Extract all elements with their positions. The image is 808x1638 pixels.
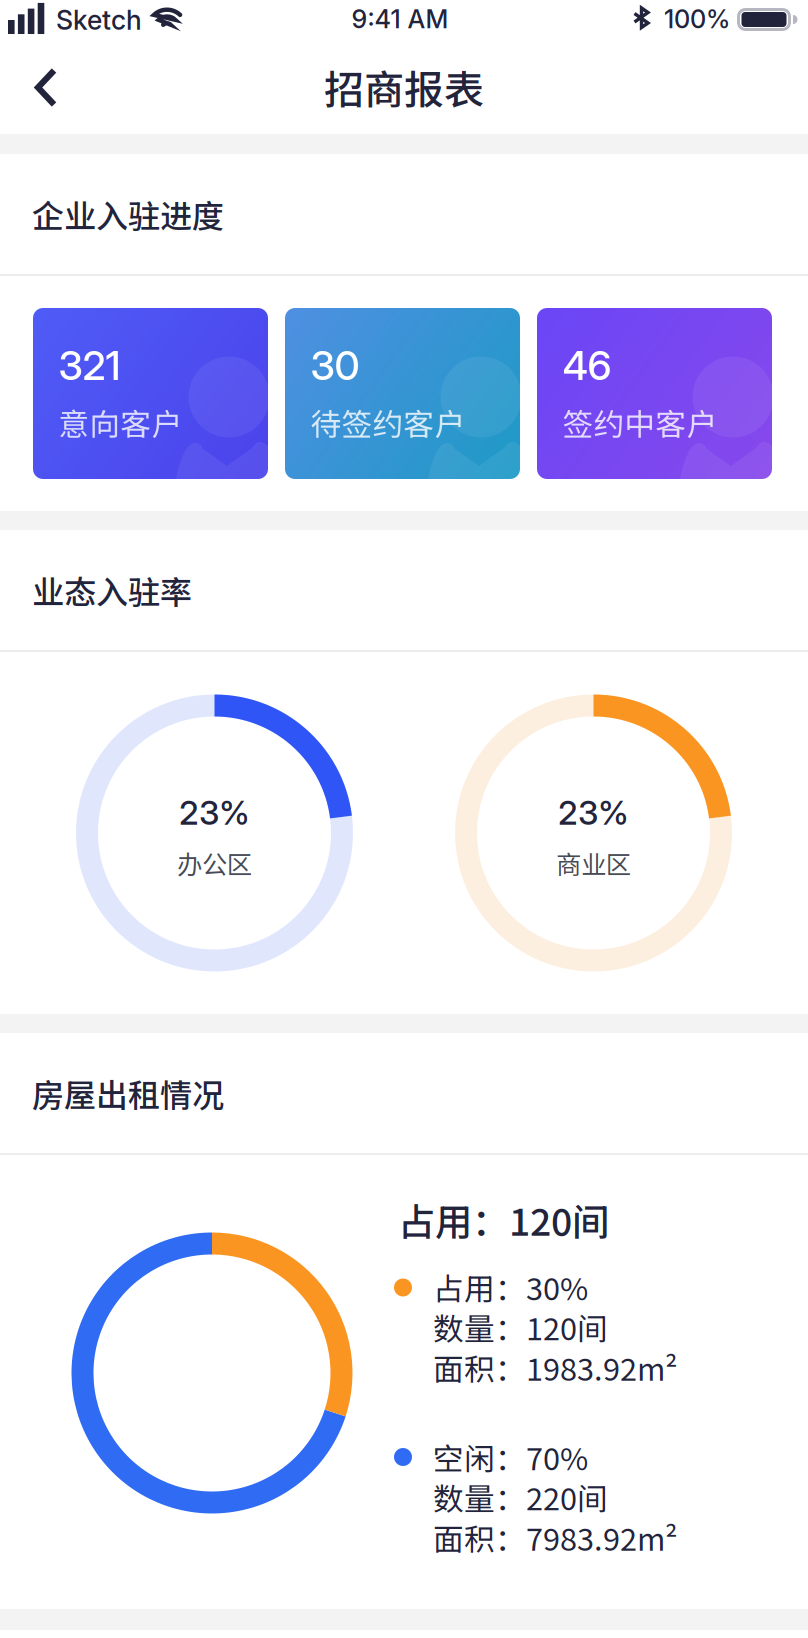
staticText: 办公区: [177, 845, 252, 881]
staticText: 签约中客户: [562, 400, 717, 445]
staticText: 意向客户: [58, 400, 182, 445]
staticText: 商业区: [556, 845, 631, 881]
staticText: Sketch: [56, 4, 142, 36]
staticText: 招商报表: [324, 58, 484, 116]
staticText: 数量：120间: [433, 1305, 608, 1349]
staticText: 100%: [664, 4, 730, 34]
staticText: 23%: [179, 792, 250, 833]
staticText: 数量：220间: [433, 1475, 608, 1519]
staticText: 待签约客户: [310, 400, 465, 445]
staticText: 23%: [558, 792, 629, 833]
staticText: 企业入驻进度: [32, 191, 224, 237]
staticText: 面积：7983.92m²: [433, 1515, 678, 1560]
staticText: 占用：120间: [398, 1192, 609, 1247]
button[interactable]: 46: [537, 308, 772, 479]
staticText: 30: [310, 341, 359, 390]
staticText: 9:41 AM: [351, 4, 448, 34]
staticText: 空闲：70%: [433, 1435, 588, 1479]
button[interactable]: 30: [285, 308, 520, 479]
button[interactable]: Back: [0, 54, 92, 134]
staticText: 321: [58, 341, 120, 390]
staticText: 面积：1983.92m²: [433, 1345, 678, 1390]
staticText: 房屋出租情况: [32, 1070, 224, 1116]
button[interactable]: 321: [33, 308, 268, 479]
staticText: 占用：30%: [433, 1265, 588, 1309]
staticText: 业态入驻率: [32, 567, 192, 613]
staticText: 46: [562, 341, 611, 390]
